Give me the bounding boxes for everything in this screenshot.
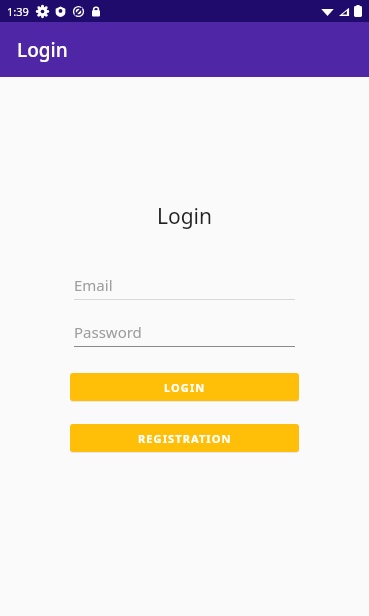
- button[interactable]: REGISTRATION: [70, 424, 299, 452]
- staticText: LOGIN: [164, 380, 206, 395]
- button[interactable]: LOGIN: [70, 373, 299, 401]
- staticText: Login: [17, 37, 68, 63]
- staticText: Email: [74, 275, 113, 295]
- staticText: Password: [74, 322, 142, 342]
- button[interactable]: Password: [74, 321, 295, 347]
- staticText: 1:39: [7, 4, 29, 19]
- staticText: Login: [0, 202, 369, 231]
- button[interactable]: Email: [74, 274, 295, 300]
- staticText: REGISTRATION: [138, 431, 232, 446]
